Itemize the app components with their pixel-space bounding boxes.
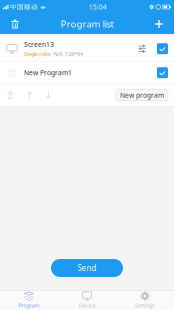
button[interactable]: Add program — [144, 14, 174, 33]
staticText: Screen13 — [24, 40, 54, 49]
staticText: Single color — [24, 50, 51, 57]
staticText: N/A — [53, 50, 62, 57]
staticText: New Program1 — [24, 68, 72, 77]
staticText: Program list — [60, 18, 113, 30]
button[interactable]: Device — [58, 291, 116, 310]
staticText: Settings — [135, 302, 155, 309]
staticText: 中国移动 — [10, 3, 38, 11]
staticText: Device — [78, 302, 95, 309]
button[interactable]: Screen13 — [0, 36, 174, 61]
staticText: Program — [18, 302, 39, 309]
staticText: 15:04 — [89, 3, 107, 11]
button[interactable]: Delete program — [0, 14, 30, 33]
button[interactable]: New Program1 — [0, 62, 174, 83]
staticText: 128*64 — [65, 50, 83, 57]
button[interactable]: Settings — [116, 291, 174, 310]
staticText: Send — [77, 263, 96, 273]
button[interactable]: Delete — [0, 85, 20, 106]
button[interactable]: Move up — [20, 85, 39, 106]
button[interactable]: Program — [0, 291, 58, 310]
button[interactable]: Send — [51, 259, 123, 277]
button[interactable]: Move down — [39, 85, 58, 106]
staticText: New program — [120, 91, 164, 100]
button[interactable]: New program — [116, 90, 168, 101]
